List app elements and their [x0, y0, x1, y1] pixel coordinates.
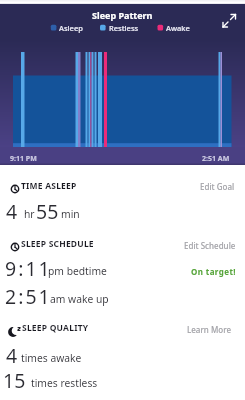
staticText: Edit Goal — [200, 181, 235, 192]
staticText: 9:11 — [5, 255, 52, 282]
staticText: Learn More — [187, 324, 231, 335]
button[interactable] — [0, 0, 245, 165]
staticText: Edit Schedule — [184, 240, 236, 251]
staticText: Restless — [109, 23, 139, 33]
staticText: Sleep Pattern — [92, 9, 153, 21]
staticText: SLEEP QUALITY — [22, 322, 89, 334]
button[interactable]: Edit Goal — [200, 181, 235, 192]
staticText: 2:51 — [5, 283, 52, 310]
staticText: am wake up — [50, 292, 109, 306]
staticText: Asleep — [59, 23, 83, 33]
staticText: 15 — [3, 367, 26, 394]
button[interactable]: Learn More — [187, 324, 231, 335]
staticText: 2:51 AM — [202, 154, 230, 164]
button[interactable]: On target! — [191, 266, 236, 277]
staticText: TIME ASLEEP — [21, 180, 77, 192]
staticText: Awake — [166, 23, 190, 33]
staticText: SLEEP SCHEDULE — [21, 238, 94, 250]
staticText: 4 — [6, 198, 18, 225]
staticText: times awake — [21, 351, 82, 365]
staticText: 55 — [36, 198, 59, 225]
staticText: 9:11 PM — [10, 154, 37, 164]
staticText: hr — [24, 207, 35, 221]
staticText: 4 — [6, 342, 18, 369]
staticText: pm bedtime — [48, 264, 107, 278]
button[interactable]: Edit Schedule — [184, 240, 236, 251]
staticText: times restless — [31, 376, 98, 390]
staticText: On target! — [191, 266, 236, 277]
staticText: min — [61, 207, 80, 221]
